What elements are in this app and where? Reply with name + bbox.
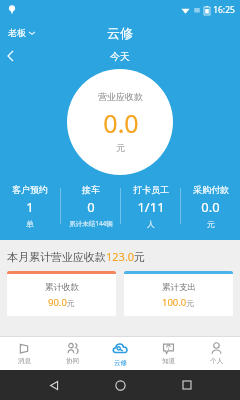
staticText: 1/11 [137, 198, 165, 216]
staticText: 90.0元 [48, 296, 75, 309]
staticText: 累计支出 [162, 282, 196, 293]
button[interactable]: Back [41, 372, 67, 398]
staticText: 0.0 [103, 106, 139, 140]
staticText: 今天 [110, 50, 130, 63]
button[interactable]: 打卡员工 [121, 178, 180, 234]
staticText: 0.0 [201, 198, 220, 216]
staticText: 元 [207, 219, 215, 228]
staticText: 0 [87, 198, 95, 216]
staticText: 云修 [114, 359, 127, 367]
button[interactable]: 云修 [96, 336, 144, 370]
button[interactable]: 采购付款 [181, 178, 240, 234]
button[interactable]: 个人 [192, 336, 240, 370]
staticText: 单 [26, 219, 34, 228]
button[interactable]: 老板 [0, 23, 41, 42]
staticText: 1 [26, 198, 34, 216]
staticText: 元 [116, 142, 125, 153]
button[interactable]: 接车 [61, 178, 120, 234]
button[interactable]: Recent apps [174, 372, 200, 398]
staticText: 云修 [107, 25, 133, 41]
staticText: 打卡员工 [133, 184, 169, 195]
staticText: 累计未结144辆 [69, 219, 113, 228]
staticText: 本月累计营业应收款123.0元 [7, 249, 146, 264]
button[interactable]: Home [107, 372, 133, 398]
button[interactable]: 消息 [0, 336, 48, 370]
staticText: 协同 [66, 357, 79, 365]
button[interactable]: 累计支出 [124, 271, 233, 316]
staticText: 老板 [8, 27, 26, 38]
staticText: 100.0元 [162, 296, 195, 309]
staticText: 16:25 [213, 4, 235, 16]
staticText: 个人 [210, 357, 223, 365]
staticText: 知道 [162, 357, 175, 365]
staticText: 客户预约 [12, 184, 48, 195]
staticText: 采购付款 [193, 184, 229, 195]
staticText: 人 [147, 219, 155, 228]
staticText: 累计收款 [45, 282, 79, 293]
staticText: 营业应收款 [98, 91, 143, 102]
button[interactable]: 协同 [48, 336, 96, 370]
staticText: 消息 [18, 357, 31, 365]
button[interactable]: 累计收款 [7, 271, 116, 316]
staticText: 接车 [82, 184, 100, 195]
button[interactable]: 客户预约 [0, 178, 60, 234]
button[interactable]: Previous day [0, 48, 21, 64]
button[interactable]: 营业应收款 [67, 69, 173, 175]
button[interactable]: 知道 [144, 336, 192, 370]
